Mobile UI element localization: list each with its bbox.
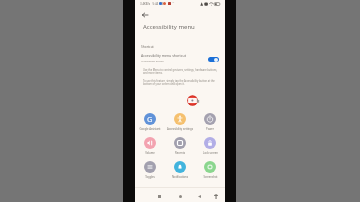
button[interactable]: Accessibility menu shortcut <box>135 51 225 63</box>
button[interactable]: Back <box>192 189 206 202</box>
button[interactable]: Home <box>173 189 187 202</box>
staticText: Accessibility menu shortcut <box>141 53 186 58</box>
button[interactable]: Lock screen <box>193 137 227 155</box>
staticText: Google Assistant <box>139 127 161 131</box>
staticText: Lock screen <box>203 151 218 155</box>
button[interactable]: Screenshot <box>193 161 227 179</box>
staticText: G <box>147 114 153 124</box>
staticText: Recents <box>175 151 185 155</box>
staticText: 3.4KB/s 5:44 PM <box>140 2 164 6</box>
button[interactable]: Recents <box>163 137 197 155</box>
staticText: Accessibility settings <box>167 127 193 131</box>
staticText: Toggles <box>145 175 155 179</box>
staticText: Power <box>206 127 214 131</box>
staticText: Volume <box>145 151 155 155</box>
staticText: Shortcut <box>141 45 154 49</box>
staticText: Accessibility button <box>141 59 164 62</box>
staticText: Use the Menu to control gestures, settin… <box>143 68 220 74</box>
button[interactable]: Accessibility settings <box>163 113 197 131</box>
button[interactable]: Navigate up <box>139 9 150 20</box>
staticText: Accessibility menu <box>143 23 195 31</box>
button[interactable]: Toggles <box>133 161 167 179</box>
staticText: Screenshot <box>203 175 218 179</box>
staticText: Notifications <box>172 175 188 179</box>
button[interactable]: Recents <box>152 189 166 202</box>
staticText: To use this feature, simply tap the Acce… <box>143 79 220 85</box>
button[interactable]: Power <box>193 113 227 131</box>
staticText: ··· <box>172 1 175 5</box>
button[interactable]: G <box>133 113 167 131</box>
button[interactable]: Notifications <box>163 161 197 179</box>
button[interactable]: Volume <box>133 137 167 155</box>
